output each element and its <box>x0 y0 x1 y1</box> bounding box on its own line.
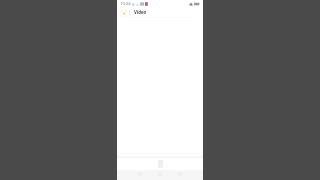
button[interactable]: Back <box>119 9 128 17</box>
staticText: 10:24 <box>120 1 131 7</box>
staticText: Video <box>134 9 147 15</box>
